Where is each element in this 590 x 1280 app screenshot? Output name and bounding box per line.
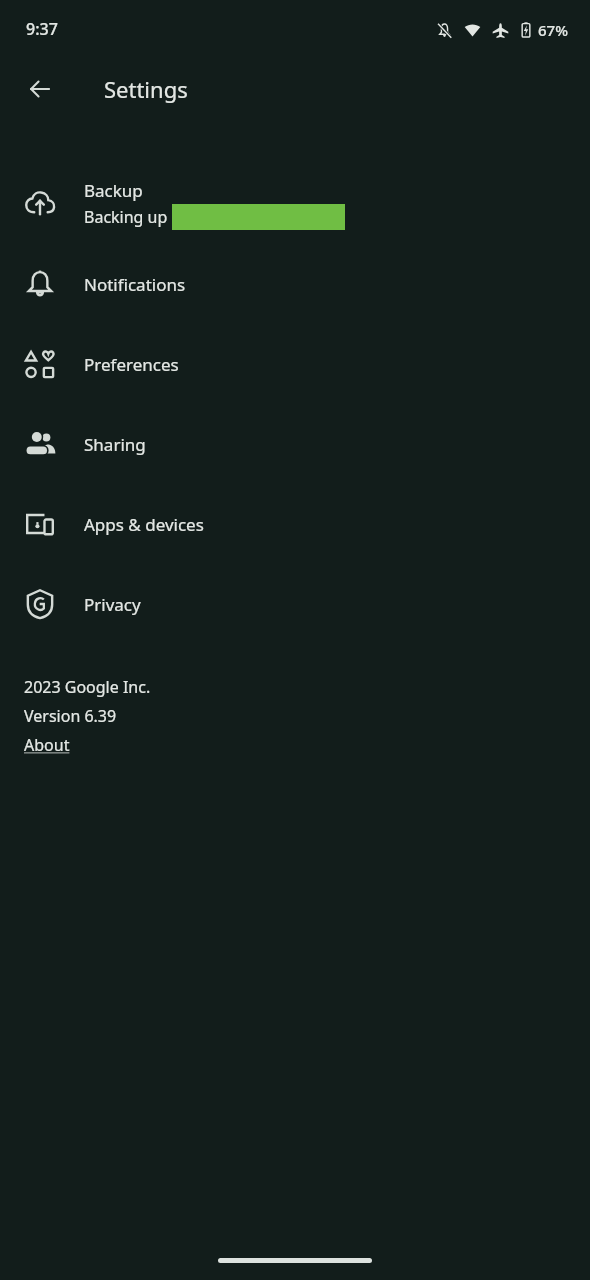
staticText: About bbox=[24, 734, 70, 756]
staticText: Privacy bbox=[84, 593, 141, 616]
staticText: Sharing bbox=[84, 433, 146, 456]
staticText: Preferences bbox=[84, 353, 179, 376]
staticText: Notifications bbox=[84, 273, 186, 296]
button[interactable]: Sharing bbox=[0, 404, 590, 484]
button[interactable]: Apps & devices bbox=[0, 484, 590, 564]
staticText: Apps & devices bbox=[84, 513, 204, 536]
button[interactable]: Privacy bbox=[0, 564, 590, 644]
button[interactable]: Back bbox=[16, 65, 64, 113]
staticText: Backup bbox=[84, 179, 143, 202]
button[interactable]: Preferences bbox=[0, 324, 590, 404]
staticText: Backing up bbox=[84, 206, 168, 228]
button[interactable]: About bbox=[24, 734, 70, 756]
staticText: Settings bbox=[104, 74, 188, 104]
button[interactable]: Backup bbox=[0, 164, 590, 244]
staticText: Version 6.39 bbox=[24, 705, 117, 727]
staticText: 2023 Google Inc. bbox=[24, 676, 151, 698]
staticText: 9:37 bbox=[26, 18, 58, 40]
staticText: 67% bbox=[538, 20, 568, 40]
button[interactable]: Notifications bbox=[0, 244, 590, 324]
